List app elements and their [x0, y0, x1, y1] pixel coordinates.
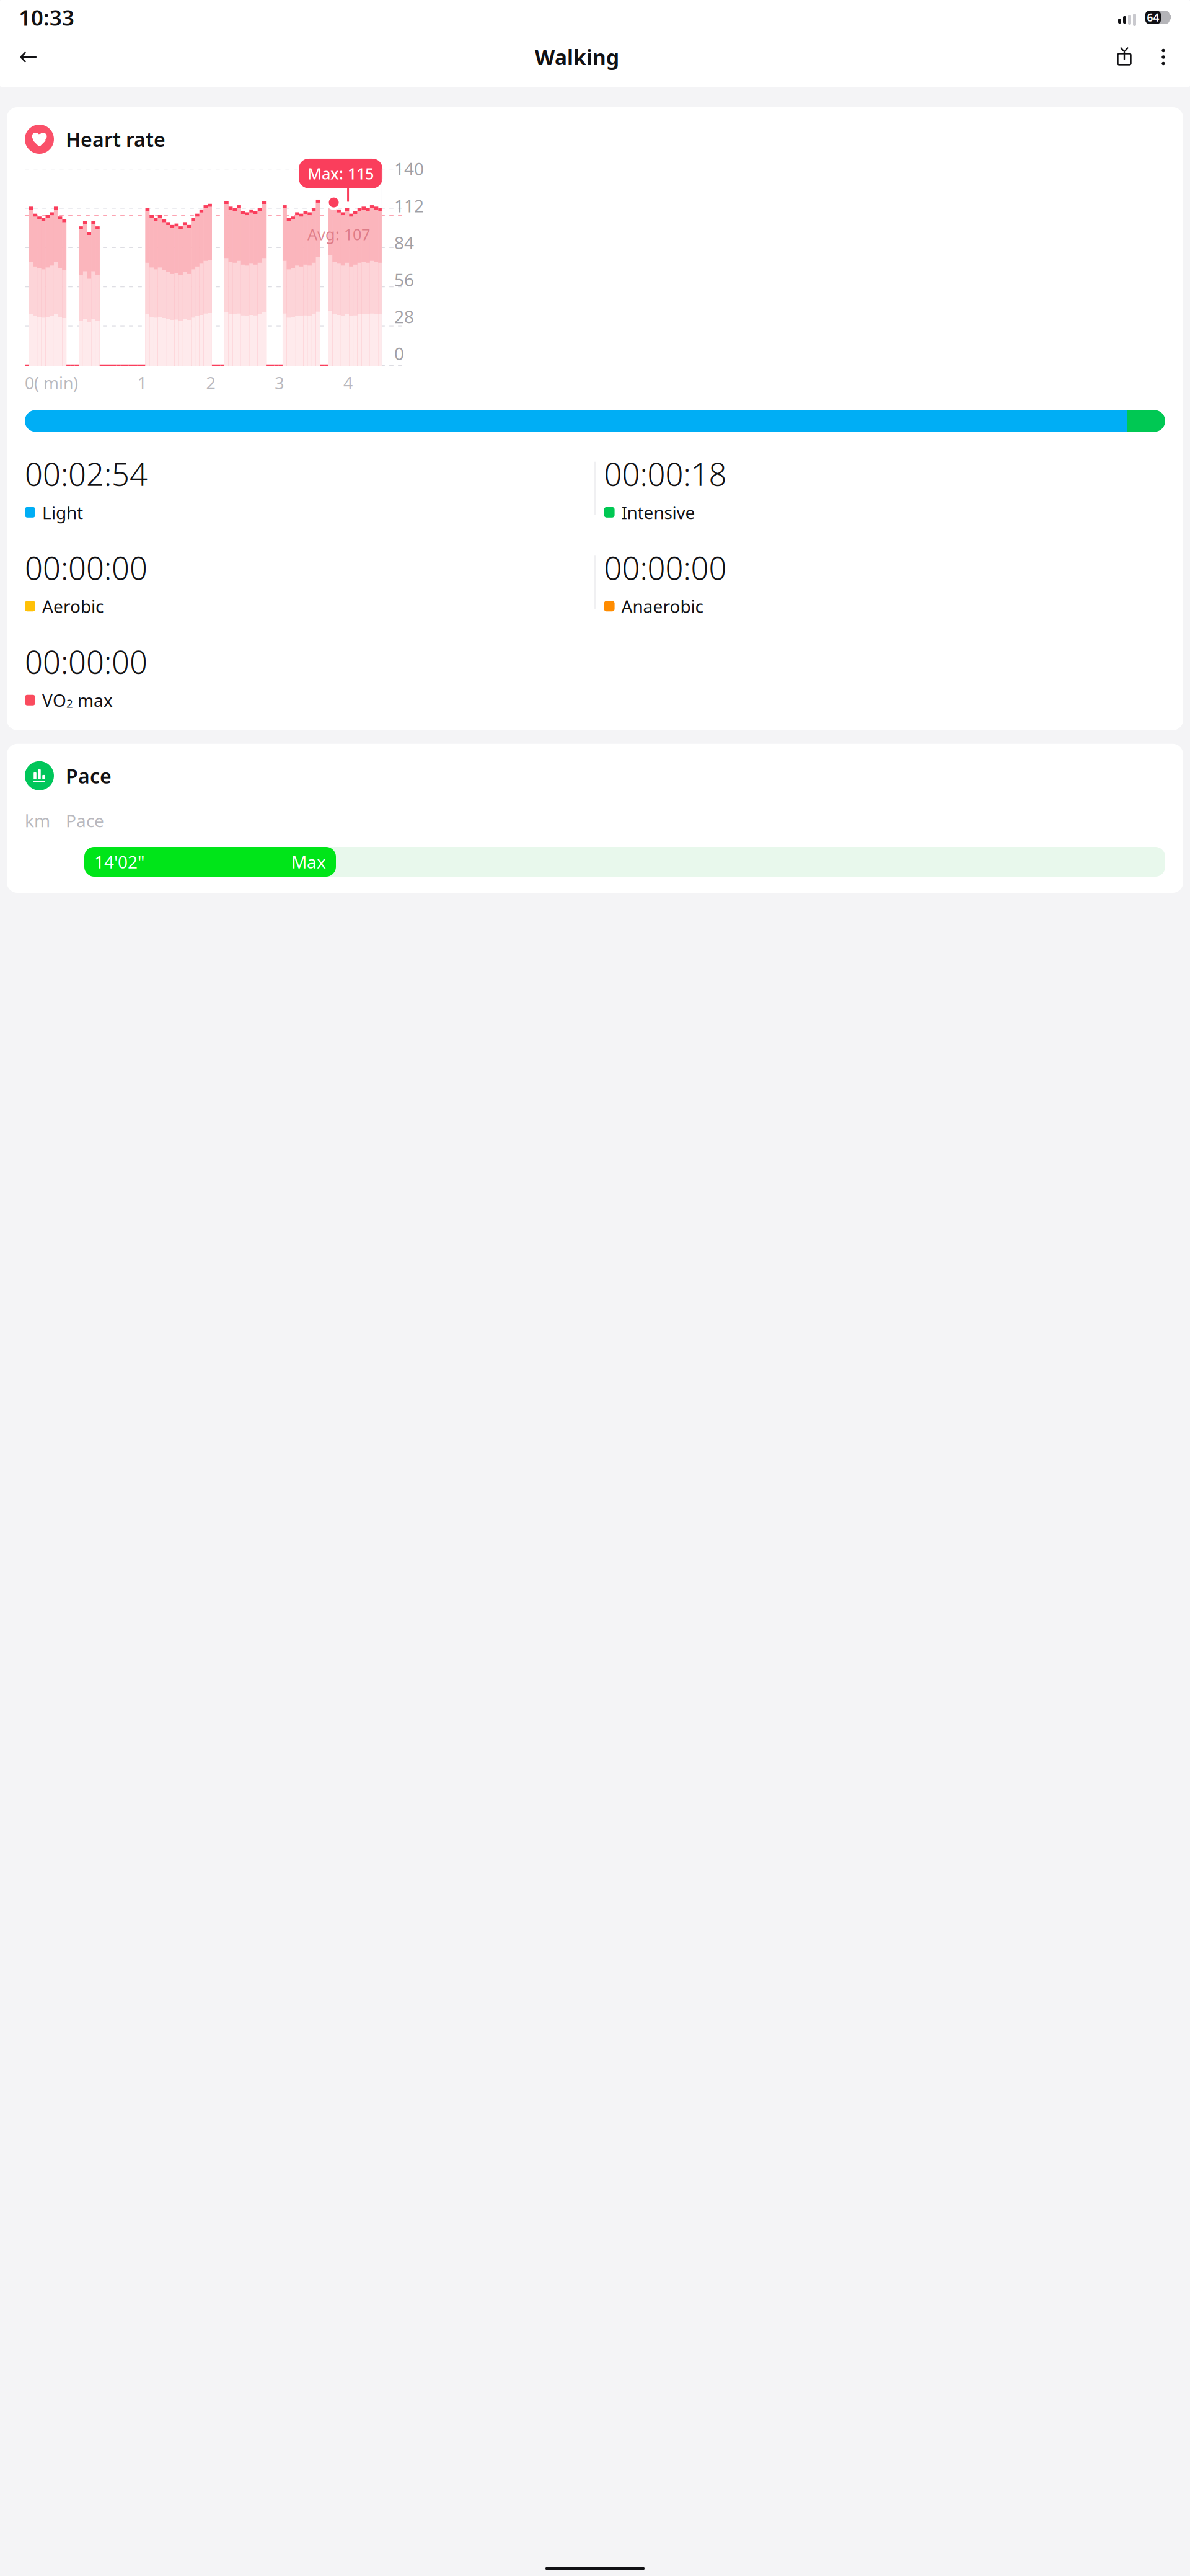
staticText: Intensive	[621, 501, 695, 524]
staticText: 140	[394, 157, 424, 180]
staticText: 00:00:00	[25, 641, 148, 682]
staticText: Heart rate	[66, 126, 165, 152]
staticText: km	[25, 809, 50, 832]
staticText: 2	[66, 695, 73, 711]
staticText: 00:02:54	[25, 453, 148, 495]
staticText: 28	[394, 305, 414, 328]
button[interactable]: Share	[1109, 42, 1139, 73]
button[interactable]: Back	[12, 41, 45, 73]
button[interactable]: More options	[1149, 42, 1178, 73]
staticText: 00:00:00	[604, 547, 727, 588]
staticText: 10:33	[19, 3, 74, 32]
staticText: Max: 115	[307, 163, 374, 184]
staticText: 56	[394, 268, 414, 291]
staticText: 112	[394, 194, 424, 217]
staticText: Walking	[535, 43, 619, 71]
staticText: 4	[343, 372, 353, 394]
staticText: 0	[394, 342, 404, 365]
staticText: 14'02"	[94, 850, 144, 873]
staticText: Pace	[66, 763, 112, 789]
staticText: 84	[394, 231, 414, 254]
staticText: 2	[206, 372, 215, 394]
staticText: 1	[137, 372, 147, 394]
staticText: Light	[42, 501, 83, 524]
staticText: 00:00:00	[25, 547, 148, 588]
staticText: max	[73, 689, 113, 712]
staticText: VO	[42, 689, 66, 712]
staticText: Aerobic	[42, 595, 104, 618]
staticText: 64	[1147, 10, 1159, 24]
staticText: Avg: 107	[307, 224, 370, 245]
staticText: Pace	[66, 809, 104, 832]
staticText: Max	[291, 850, 326, 873]
staticText: 3	[275, 372, 284, 394]
staticText: 0( min)	[25, 372, 78, 394]
staticText: Anaerobic	[621, 595, 703, 618]
staticText: 00:00:18	[604, 453, 727, 495]
